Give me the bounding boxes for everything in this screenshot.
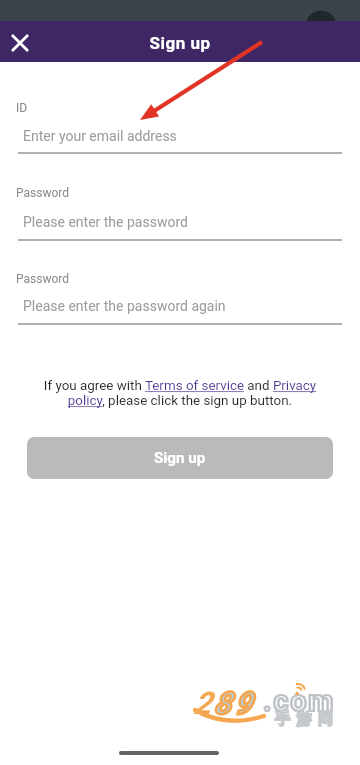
button[interactable]: [18, 206, 342, 241]
button[interactable]: If you agree with Terms of service and P…: [0, 378, 360, 394]
staticText: 89: [214, 685, 255, 721]
button[interactable]: [18, 119, 342, 153]
staticText: Password: [16, 186, 70, 200]
button[interactable]: [18, 290, 342, 325]
button[interactable]: Sign up: [27, 437, 333, 479]
staticText: Password: [16, 272, 70, 286]
staticText: 89: [214, 685, 255, 721]
button[interactable]: policy, please click the sign up button.: [0, 393, 360, 409]
staticText: Please enter the password: [23, 214, 188, 230]
staticText: .com: [263, 684, 336, 718]
staticText: Please enter the password again: [23, 298, 226, 314]
staticText: 手游网: [275, 710, 340, 729]
staticText: Sign up: [0, 33, 360, 53]
staticText: Enter your email address: [23, 128, 177, 144]
staticText: ID: [16, 101, 28, 115]
button[interactable]: [0, 22, 40, 62]
staticText: 2: [194, 685, 215, 721]
staticText: .com: [263, 684, 336, 718]
staticText: Sign up: [154, 449, 206, 467]
staticText: 手游网: [275, 710, 340, 729]
